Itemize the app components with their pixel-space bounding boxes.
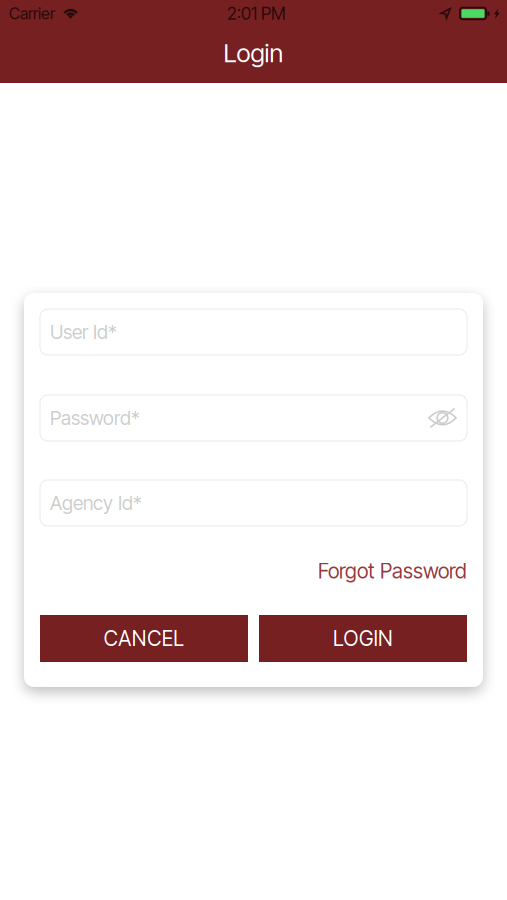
staticText: CANCEL [104, 626, 184, 651]
staticText: LOGIN [333, 626, 393, 651]
button[interactable]: LOGIN [259, 615, 467, 662]
staticText: Agency Id* [50, 491, 142, 515]
button[interactable]: CANCEL [40, 615, 248, 662]
staticText: Password* [50, 406, 140, 430]
staticText: Forgot Password [318, 558, 467, 583]
button[interactable]: Password* [40, 395, 467, 441]
staticText: Login [223, 38, 283, 68]
button[interactable]: Agency Id* [40, 480, 467, 526]
button[interactable]: User Id* [40, 309, 467, 355]
button[interactable]: Forgot Password [318, 558, 467, 584]
staticText: User Id* [50, 320, 117, 344]
staticText: Carrier [9, 4, 55, 23]
staticText: 2:01 PM [227, 3, 286, 24]
